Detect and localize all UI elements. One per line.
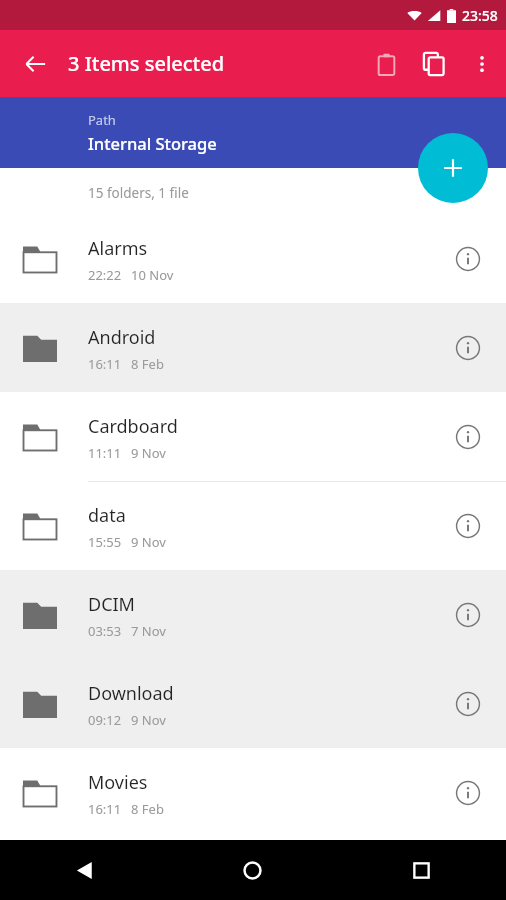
staticText: DCIM — [88, 592, 135, 617]
button[interactable]: Movies — [0, 748, 506, 837]
button[interactable]: Copy — [410, 40, 458, 88]
button[interactable]: Info — [444, 591, 492, 639]
staticText: Android — [88, 325, 156, 350]
button[interactable]: Download — [0, 659, 506, 748]
staticText: 8 Feb — [131, 800, 164, 818]
staticText: Internal Storage — [88, 132, 217, 154]
staticText: 16:11 — [88, 355, 122, 373]
staticText: Alarms — [88, 236, 148, 261]
staticText: 8 Feb — [131, 355, 164, 373]
button[interactable]: Back — [0, 840, 168, 900]
staticText: 9 Nov — [131, 444, 166, 462]
button[interactable]: Paste — [362, 40, 410, 88]
staticText: data — [88, 503, 126, 528]
button[interactable]: Info — [444, 502, 492, 550]
button[interactable]: Cardboard — [0, 392, 506, 481]
staticText: Download — [88, 681, 174, 706]
staticText: 22:22 — [88, 266, 122, 284]
button[interactable]: Info — [444, 324, 492, 372]
button[interactable]: Info — [444, 235, 492, 283]
button[interactable]: More options — [458, 40, 506, 88]
button[interactable]: Recents — [337, 840, 506, 900]
staticText: 23:58 — [462, 6, 498, 25]
staticText: 11:11 — [88, 444, 122, 462]
button[interactable]: Info — [444, 413, 492, 461]
button[interactable]: Alarms — [0, 214, 506, 303]
button[interactable]: Add — [418, 133, 488, 203]
staticText: Movies — [88, 770, 148, 795]
button[interactable]: data — [0, 481, 506, 570]
button[interactable]: Android — [0, 303, 506, 392]
staticText: 7 Nov — [131, 622, 166, 640]
staticText: Path — [88, 111, 116, 129]
staticText: 15 folders, 1 file — [88, 184, 189, 202]
button[interactable]: DCIM — [0, 570, 506, 659]
button[interactable]: Info — [444, 680, 492, 728]
staticText: 09:12 — [88, 711, 122, 729]
staticText: 15:55 — [88, 533, 122, 551]
staticText: Cardboard — [88, 414, 178, 439]
staticText: 10 Nov — [131, 266, 174, 284]
button[interactable]: Home — [168, 840, 337, 900]
staticText: 9 Nov — [131, 711, 166, 729]
staticText: 16:11 — [88, 800, 122, 818]
staticText: 9 Nov — [131, 533, 166, 551]
button[interactable]: Info — [444, 769, 492, 817]
button[interactable]: Back — [12, 40, 60, 88]
staticText: 03:53 — [88, 622, 122, 640]
staticText: 3 Items selected — [68, 50, 225, 77]
